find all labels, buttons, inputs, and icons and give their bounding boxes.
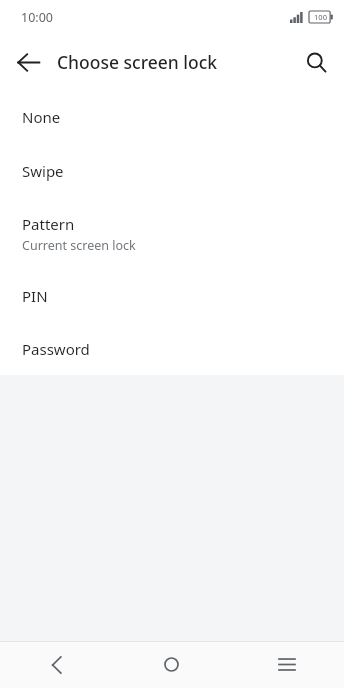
button[interactable]: None xyxy=(0,90,344,144)
staticText: Current screen lock xyxy=(22,237,136,254)
staticText: PIN xyxy=(22,286,48,306)
button[interactable]: Back xyxy=(6,40,50,84)
button[interactable]: Pattern xyxy=(0,198,344,269)
button[interactable]: Home xyxy=(114,641,229,688)
button[interactable]: Swipe xyxy=(0,144,344,198)
staticText: Pattern xyxy=(22,214,75,234)
staticText: Swipe xyxy=(22,161,64,181)
staticText: None xyxy=(22,107,61,127)
staticText: Choose screen lock xyxy=(57,50,218,74)
button[interactable]: Search xyxy=(294,40,338,84)
button[interactable]: Back xyxy=(0,641,114,688)
staticText: 100 xyxy=(314,12,327,22)
button[interactable]: PIN xyxy=(0,269,344,323)
button[interactable]: Recent apps xyxy=(229,641,344,688)
staticText: 10:00 xyxy=(21,9,53,26)
staticText: Password xyxy=(22,339,90,359)
button[interactable]: Password xyxy=(0,323,344,375)
